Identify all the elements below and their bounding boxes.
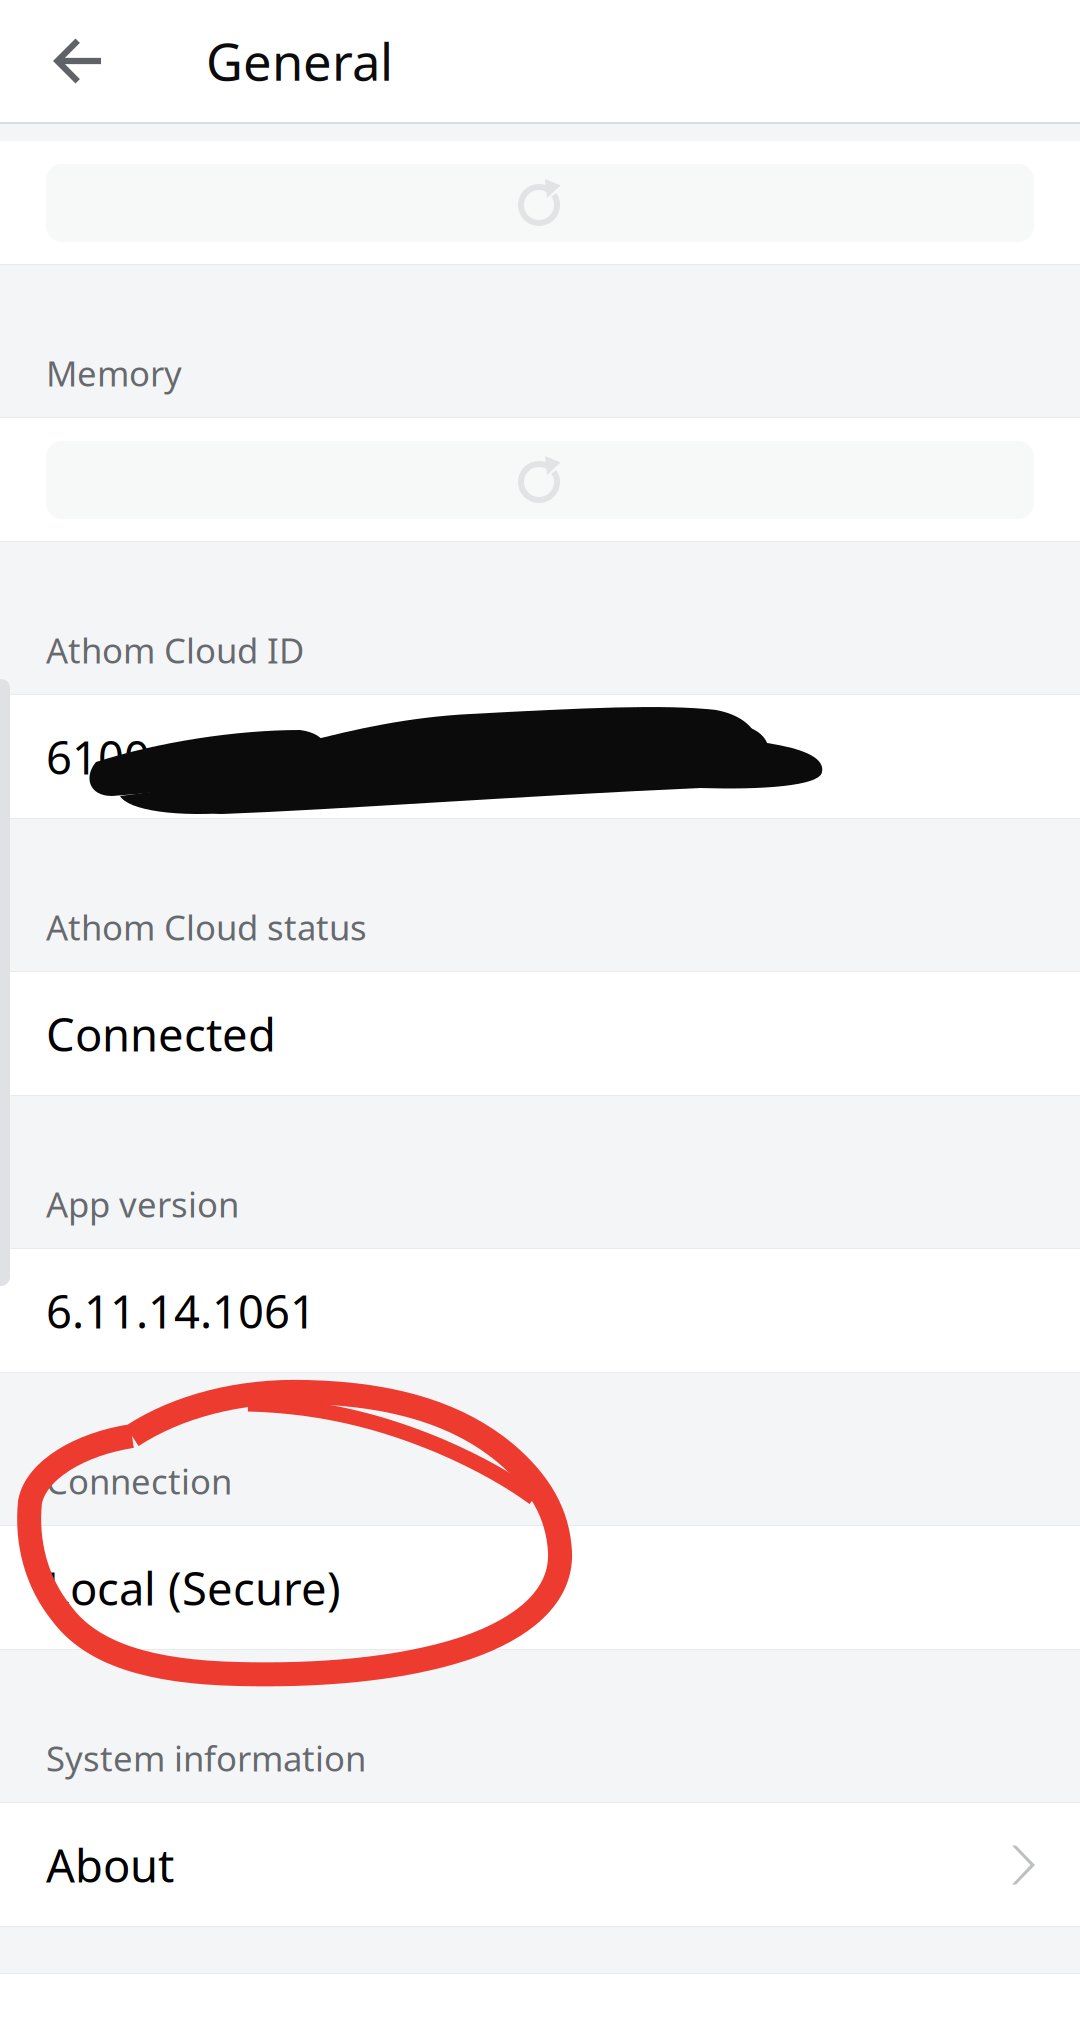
button[interactable]: Reload bbox=[0, 418, 1080, 542]
staticText: Memory bbox=[46, 350, 182, 396]
button[interactable]: Back bbox=[0, 0, 122, 122]
staticText: Athom Cloud ID bbox=[46, 627, 304, 673]
staticText: System information bbox=[46, 1735, 366, 1781]
button[interactable]: Reload bbox=[0, 141, 1080, 265]
staticText: 6.11.14.1061 bbox=[46, 1281, 316, 1341]
button[interactable]: Local (Secure) bbox=[0, 1526, 1080, 1650]
staticText: Connection bbox=[46, 1458, 232, 1504]
staticText: 6100 bbox=[46, 727, 150, 787]
staticText: App version bbox=[46, 1181, 239, 1227]
button[interactable]: 6100 bbox=[0, 695, 1080, 819]
staticText: Connected bbox=[46, 1004, 276, 1064]
staticText: Athom Cloud status bbox=[46, 904, 367, 950]
staticText: Local (Secure) bbox=[46, 1558, 341, 1618]
button[interactable]: About bbox=[0, 1803, 1080, 1927]
staticText: General bbox=[206, 27, 393, 95]
button[interactable]: Connected bbox=[0, 972, 1080, 1096]
button[interactable]: 6.11.14.1061 bbox=[0, 1249, 1080, 1373]
staticText: About bbox=[46, 1835, 174, 1895]
